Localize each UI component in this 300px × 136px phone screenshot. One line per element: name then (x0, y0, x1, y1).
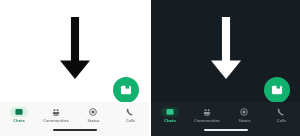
button[interactable]: Calls (112, 105, 148, 123)
staticText: Calls (126, 118, 135, 123)
staticText: Chats (164, 118, 176, 123)
button[interactable]: Communities (38, 105, 74, 123)
staticText: Status (87, 118, 100, 123)
button[interactable]: New chat (113, 77, 139, 103)
staticText: Status (238, 118, 251, 123)
staticText: Chats (13, 118, 25, 123)
staticText: Communities (194, 118, 220, 123)
button[interactable]: Chats (1, 105, 37, 123)
staticText: Communities (43, 118, 69, 123)
staticText: Calls (277, 118, 286, 123)
button[interactable]: Status (226, 105, 262, 123)
button[interactable]: Calls (263, 105, 299, 123)
button[interactable]: Communities (189, 105, 225, 123)
button[interactable]: Status (75, 105, 111, 123)
button[interactable]: Chats (152, 105, 188, 123)
button[interactable]: New chat (264, 77, 290, 103)
